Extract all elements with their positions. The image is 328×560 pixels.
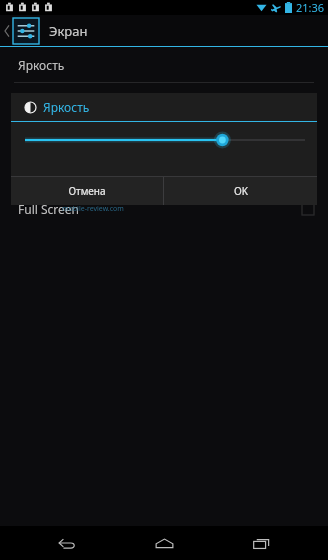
staticText: Яркость — [18, 57, 65, 73]
button[interactable]: Размер шрифта — [0, 155, 328, 190]
button[interactable]: Отмена — [11, 177, 163, 205]
button[interactable]: Recent apps — [231, 526, 291, 560]
button[interactable]: Brightness slider — [11, 122, 317, 176]
button[interactable]: Home — [134, 526, 194, 560]
button[interactable]: Back — [37, 526, 97, 560]
button[interactable]: Спящий режим — [0, 119, 328, 154]
staticText: После 10 мин. бездействия — [18, 140, 125, 151]
staticText: mobile-review.com — [62, 204, 124, 214]
staticText: Обои — [18, 93, 49, 109]
staticText: 21:36 — [296, 0, 325, 15]
staticText: Яркость — [43, 99, 90, 115]
staticText: Отмена — [68, 184, 106, 198]
staticText: Обычный — [18, 176, 56, 187]
staticText: OK — [234, 184, 248, 198]
staticText: Спящий режим — [18, 123, 109, 139]
staticText: Экран — [49, 22, 88, 40]
button[interactable]: Обои — [0, 83, 328, 118]
staticText: Full Screen — [18, 201, 79, 217]
button[interactable]: OK — [164, 177, 317, 205]
button[interactable]: Back — [0, 18, 41, 44]
button[interactable]: Яркость — [0, 47, 328, 82]
button[interactable]: Full Screen — [0, 191, 328, 226]
